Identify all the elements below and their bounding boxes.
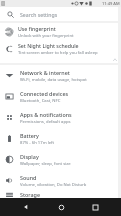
button[interactable]: Storage bbox=[0, 191, 118, 198]
staticText: Storage bbox=[20, 191, 41, 198]
button[interactable]: Back bbox=[18, 199, 34, 215]
staticText: Wallpaper, sleep, font size bbox=[20, 161, 71, 167]
button[interactable]: Search settings bbox=[0, 7, 118, 21]
staticText: Permissions, default apps bbox=[20, 119, 71, 125]
staticText: Unlock with your fingerprint bbox=[18, 33, 74, 39]
staticText: 87% - 6h 17m left bbox=[20, 140, 55, 146]
button[interactable]: Network & internet bbox=[0, 65, 118, 86]
button[interactable]: Use fingerprint bbox=[0, 23, 118, 40]
staticText: Tint screen amber to help you fall aslee… bbox=[18, 50, 98, 56]
button[interactable]: Display bbox=[0, 149, 118, 170]
staticText: Display bbox=[20, 153, 39, 160]
button[interactable]: Set Night Light schedule bbox=[0, 40, 118, 57]
staticText: 11:49 AM bbox=[102, 1, 120, 6]
staticText: Sound bbox=[20, 174, 37, 181]
staticText: Apps & notifications bbox=[20, 111, 72, 118]
button[interactable]: Apps & notifications bbox=[0, 107, 118, 128]
staticText: Connected devices bbox=[20, 90, 69, 97]
staticText: Volume, vibration, Do Not Disturb bbox=[20, 182, 87, 188]
button[interactable]: Home bbox=[53, 199, 69, 215]
staticText: Bluetooth, Cast, NFC bbox=[20, 98, 61, 104]
staticText: Search settings bbox=[20, 11, 58, 18]
staticText: Battery bbox=[20, 132, 39, 139]
button[interactable]: Battery bbox=[0, 128, 118, 149]
button[interactable]: Recent apps bbox=[87, 199, 103, 215]
staticText: Wi-Fi, mobile, data usage, hotspot bbox=[20, 77, 87, 83]
staticText: Network & internet bbox=[20, 69, 70, 76]
staticText: Set Night Light schedule bbox=[18, 42, 79, 49]
staticText: Use fingerprint bbox=[18, 25, 56, 32]
button[interactable]: Sound bbox=[0, 170, 118, 191]
button[interactable]: Collapse suggestions bbox=[112, 57, 118, 63]
button[interactable]: Connected devices bbox=[0, 86, 118, 107]
